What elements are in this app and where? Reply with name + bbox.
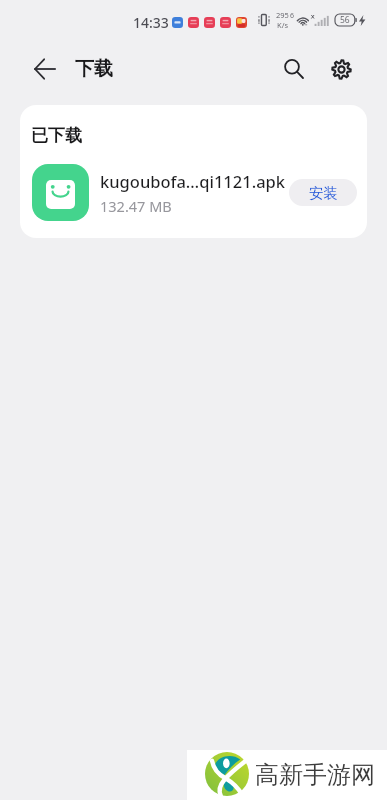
staticText: 132.47 MB (100, 196, 172, 216)
button[interactable]: Settings (326, 54, 356, 84)
button[interactable]: Back (30, 54, 60, 84)
button[interactable]: 安装 (289, 179, 357, 206)
staticText: kugoubofa…qi1121.apk (100, 170, 286, 192)
staticText: 6 (290, 11, 295, 21)
staticText: 已下载 (31, 125, 82, 146)
staticText: 295 (276, 10, 289, 20)
staticText: 56 (340, 14, 350, 26)
staticText: 安装 (309, 184, 338, 202)
staticText: 14:33 (133, 13, 169, 32)
staticText: K/s (277, 20, 289, 30)
staticText: 下载 (75, 57, 113, 81)
button[interactable]: Search (279, 54, 309, 84)
button[interactable]: kugoubofa…qi1121.apk (20, 164, 367, 221)
staticText: 高新手游网 (255, 760, 375, 790)
